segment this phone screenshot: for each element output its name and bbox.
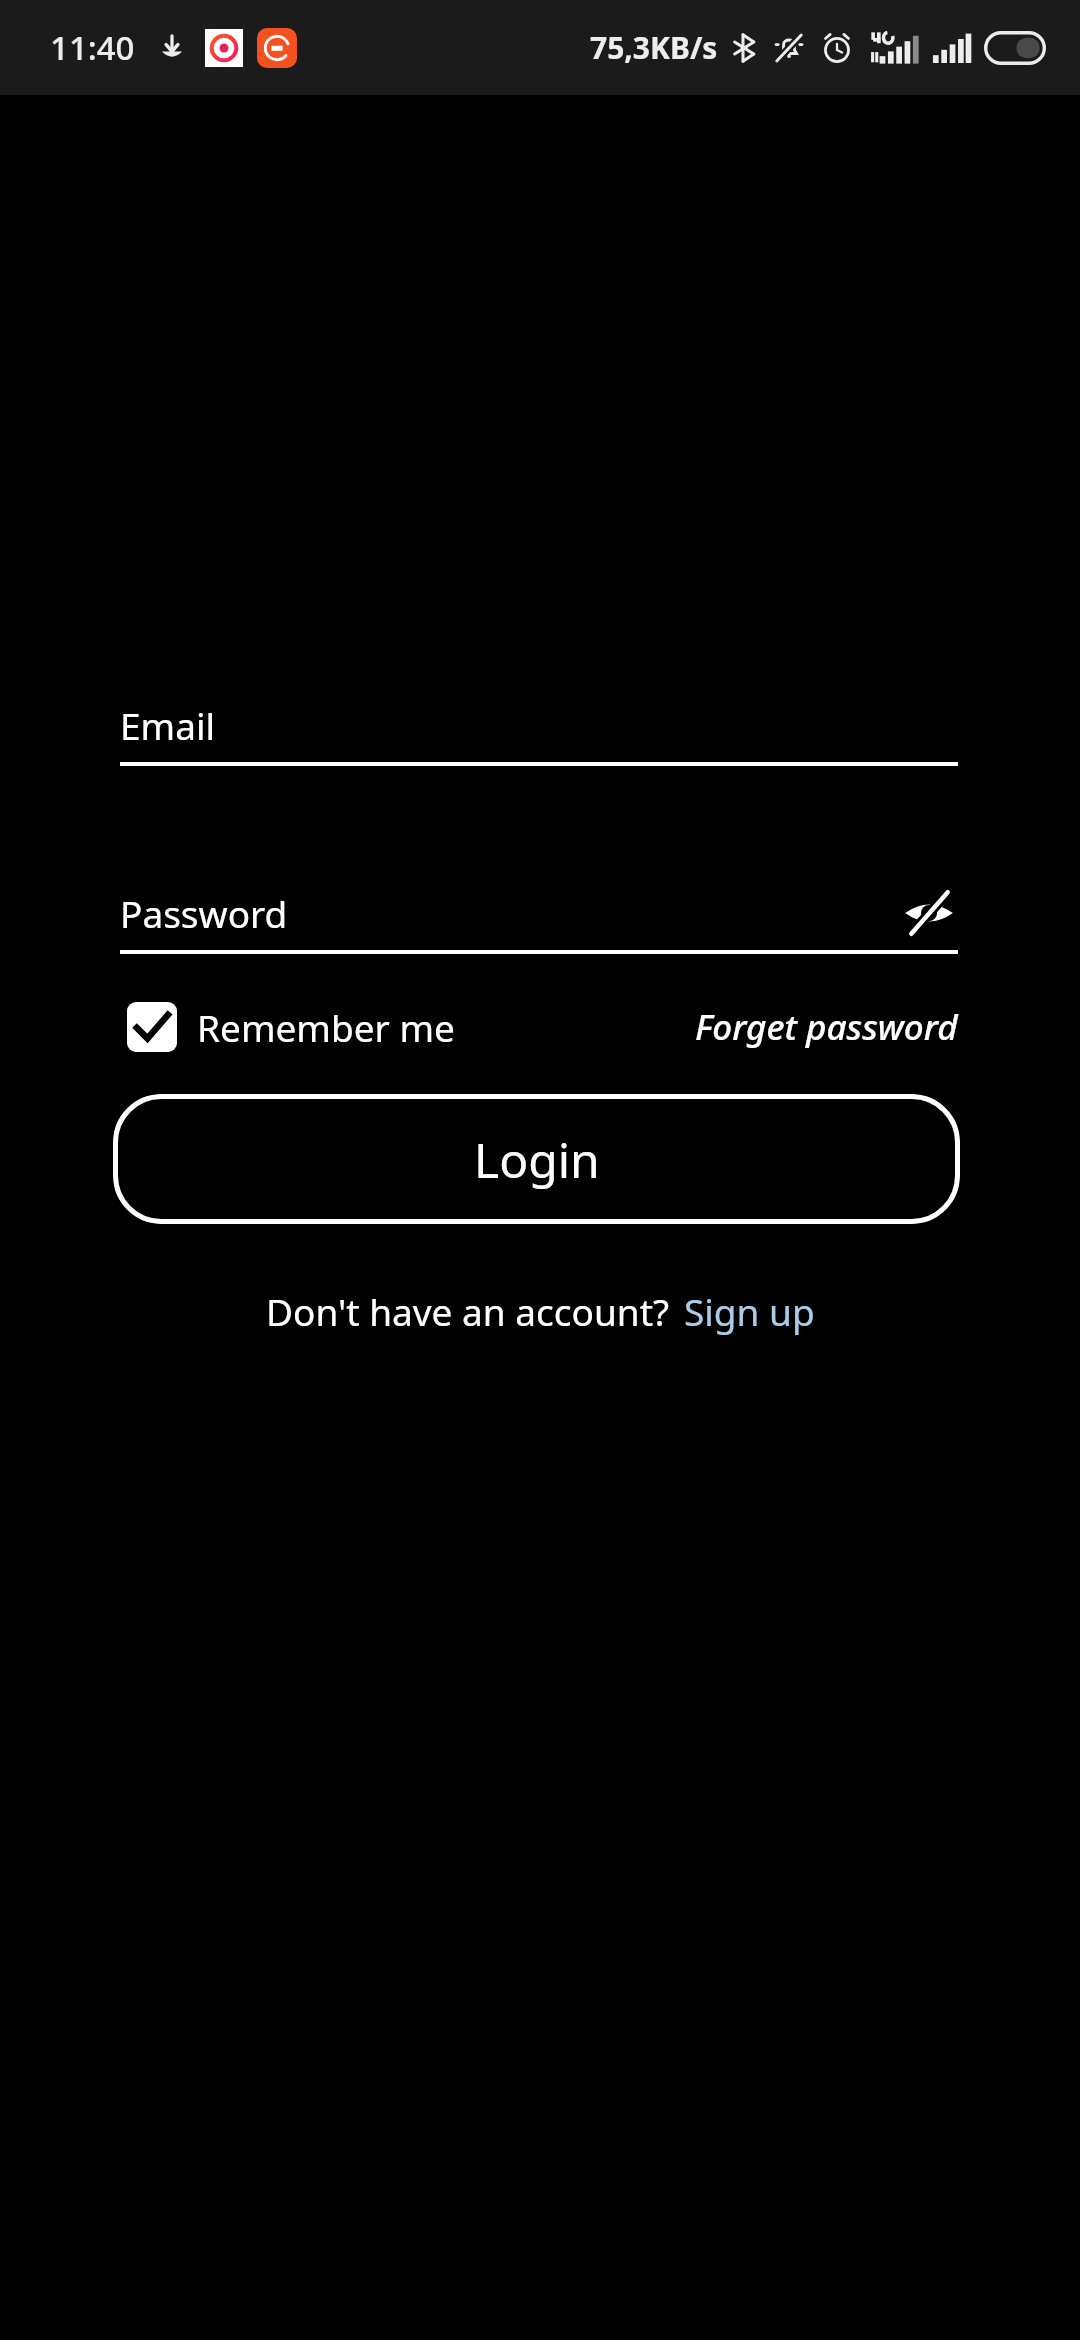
- button[interactable]: Show password: [900, 884, 958, 942]
- staticText: 75,3KB/s: [590, 27, 718, 68]
- button[interactable]: Login: [113, 1094, 960, 1224]
- button[interactable]: Remember me: [127, 1002, 455, 1052]
- staticText: Login: [474, 1127, 600, 1192]
- button[interactable]: Sign up: [684, 1286, 815, 1336]
- staticText: Remember me: [197, 1002, 455, 1052]
- button[interactable]: Forget password: [695, 1003, 958, 1051]
- staticText: Don't have an account?: [266, 1286, 670, 1336]
- staticText: 11:40: [50, 25, 135, 70]
- button[interactable]: Email: [120, 700, 958, 766]
- staticText: Email: [120, 700, 216, 750]
- staticText: Sign up: [684, 1286, 815, 1336]
- button[interactable]: Password: [120, 888, 900, 938]
